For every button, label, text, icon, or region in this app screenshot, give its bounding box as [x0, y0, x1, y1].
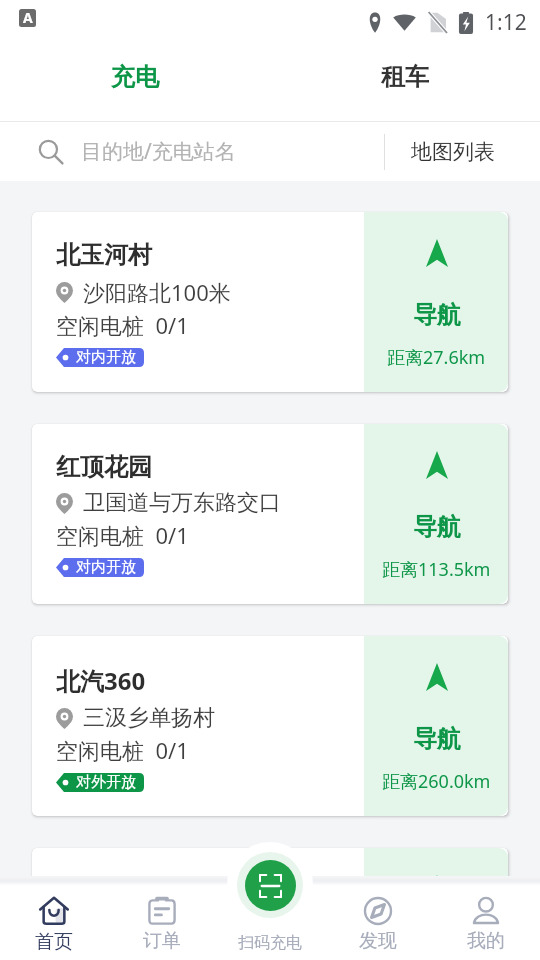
button[interactable]: 北玉河村 [32, 212, 508, 392]
staticText: 经海三路与科创街交口 [83, 913, 303, 941]
staticText: 发现 [359, 929, 397, 953]
staticText: 地图列表 [411, 139, 495, 165]
staticText: 沙阳路北100米 [83, 277, 231, 307]
staticText: 亦庄开发区 [56, 876, 176, 906]
button[interactable]: 导航 [364, 636, 508, 816]
staticText: 三汲乡单扬村 [83, 704, 215, 732]
staticText: 对外开放 [76, 773, 136, 792]
button[interactable]: 导航 [364, 848, 508, 960]
button[interactable]: 订单 [108, 885, 216, 960]
staticText: 北玉河村 [56, 240, 152, 270]
staticText: A [23, 9, 33, 26]
button[interactable]: 北汽360 [32, 636, 508, 816]
staticText: 首页 [35, 930, 73, 954]
staticText: 北汽360 [56, 664, 146, 697]
staticText: 订单 [143, 929, 181, 953]
button[interactable]: 地图列表 [384, 122, 540, 181]
staticText: 我的 [467, 929, 505, 953]
staticText: 距离113.5km [382, 557, 491, 582]
button[interactable]: 目的地/充电站名 [0, 122, 540, 181]
button[interactable]: 导航 [364, 212, 508, 392]
staticText: 导航 [413, 724, 461, 754]
staticText: 对内开放 [76, 348, 136, 367]
staticText: 空闲电桩 0/1 [56, 310, 189, 340]
button[interactable]: 租车 [270, 45, 540, 121]
staticText: 红顶花园 [56, 452, 152, 482]
staticText: 充电 [111, 62, 159, 92]
button[interactable]: 发现 [324, 885, 432, 960]
button[interactable]: 我的 [432, 885, 540, 960]
staticText: 距离260.0km [382, 769, 491, 794]
button[interactable]: 充电 [0, 45, 270, 121]
button[interactable]: 亦庄开发区 [32, 848, 508, 960]
button[interactable]: 红顶花园 [32, 424, 508, 604]
button[interactable]: 扫码充电 [216, 885, 324, 960]
staticText: 目的地/充电站名 [81, 137, 236, 166]
staticText: 空闲电桩 0/1 [56, 520, 189, 550]
staticText: 距离27.6km [387, 345, 486, 370]
staticText: 空闲电桩 0/2 [56, 944, 189, 960]
staticText: 导航 [413, 300, 461, 330]
staticText: 1:12 [485, 8, 527, 37]
button[interactable]: 扫码充电 [245, 860, 296, 911]
staticText: 空闲电桩 0/1 [56, 735, 189, 765]
staticText: 对内开放 [76, 558, 136, 577]
staticText: 租车 [381, 62, 429, 92]
staticText: 卫国道与万东路交口 [83, 489, 281, 517]
button[interactable]: 导航 [364, 424, 508, 604]
staticText: 导航 [413, 512, 461, 542]
button[interactable]: 首页 [0, 885, 108, 960]
staticText: 扫码充电 [238, 933, 302, 953]
